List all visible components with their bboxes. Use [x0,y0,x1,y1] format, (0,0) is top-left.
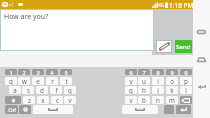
button[interactable]: Recents [194,25,209,38]
staticText: k [170,86,174,94]
staticText: 0 [184,69,188,75]
button[interactable]: Attach [156,40,172,53]
button[interactable] [164,105,174,114]
button[interactable]: 8 [152,69,164,75]
staticText: 3 [36,69,40,75]
staticText: x [41,96,45,104]
staticText: i [157,77,159,85]
button[interactable]: k [166,86,178,94]
button[interactable]: Enter [176,105,191,114]
staticText: t [65,77,68,85]
button[interactable]: g [125,86,137,94]
button[interactable]: h [138,86,150,94]
staticText: 6 [129,69,133,75]
staticText: y [129,77,133,85]
staticText: n [156,96,160,104]
button[interactable]: Home [194,53,209,66]
staticText: f [55,86,58,94]
button[interactable]: p [180,77,192,85]
staticText: d [40,86,44,94]
button[interactable]: z [23,96,35,104]
button[interactable]: u [138,77,150,85]
button[interactable]: s [22,86,34,94]
button[interactable]: Space [122,105,158,114]
staticText: m [169,96,175,104]
staticText: How are you? [4,12,49,22]
staticText: 1 [9,69,13,75]
staticText: q [9,77,13,85]
button[interactable]: y [125,77,137,85]
staticText: 8 [156,69,160,75]
button[interactable]: Ctrl [5,105,18,114]
staticText: 4G [158,2,165,9]
button[interactable]: Backspace [180,96,192,104]
button[interactable]: e [32,77,44,85]
button[interactable]: t [60,77,72,85]
staticText: g [129,86,133,94]
staticText: p [184,77,188,85]
button[interactable]: m [166,96,178,104]
staticText: h [142,86,146,94]
button[interactable]: d [36,86,48,94]
staticText: 7 [142,69,146,75]
button[interactable]: a [9,86,21,94]
button[interactable]: 2 [18,69,30,75]
button[interactable]: 9 [166,69,178,75]
button[interactable]: 6 [125,69,137,75]
button[interactable] [0,9,154,51]
button[interactable]: r [46,77,58,85]
button[interactable]: g [64,86,76,94]
button[interactable]: b [138,96,150,104]
button[interactable]: v [64,96,76,104]
staticText: 4 [50,69,54,75]
button[interactable]: c [51,96,63,104]
button[interactable]: Settings [19,105,31,114]
staticText: 1:18 PM [169,1,194,10]
button[interactable]: n [152,96,164,104]
staticText: v [68,96,72,104]
staticText: u [142,77,146,85]
staticText: v [129,96,133,104]
staticText: Send [176,43,191,51]
button[interactable]: 5 [60,69,72,75]
staticText: 5 [64,69,68,75]
button[interactable]: Back [194,80,209,93]
button[interactable]: i [152,77,164,85]
button[interactable]: l [180,86,192,94]
staticText: a [13,86,17,94]
button[interactable]: q [5,77,17,85]
button[interactable]: v [125,96,137,104]
button[interactable]: 7 [138,69,150,75]
staticText: c [56,96,59,104]
staticText: s [27,86,30,94]
button[interactable]: 1 [5,69,17,75]
button[interactable]: Shift [5,96,21,104]
staticText: o [170,77,174,85]
staticText: z [28,96,31,104]
staticText: g [68,86,72,94]
staticText: r [51,77,54,85]
staticText: e [36,77,40,85]
button[interactable]: o [166,77,178,85]
staticText: 9 [170,69,174,75]
button[interactable]: 3 [32,69,44,75]
staticText: w [22,77,27,85]
button[interactable]: Space [33,105,73,114]
button[interactable]: f [50,86,62,94]
staticText: l [185,86,187,94]
button[interactable]: 4 [46,69,58,75]
button[interactable]: Send [175,40,192,53]
staticText: b [142,96,146,104]
button[interactable]: 0 [180,69,192,75]
staticText: Ctrl [8,107,16,113]
staticText: 2 [22,69,26,75]
button[interactable]: w [18,77,30,85]
button[interactable]: x [37,96,49,104]
staticText: j [157,86,159,94]
button[interactable]: j [152,86,164,94]
